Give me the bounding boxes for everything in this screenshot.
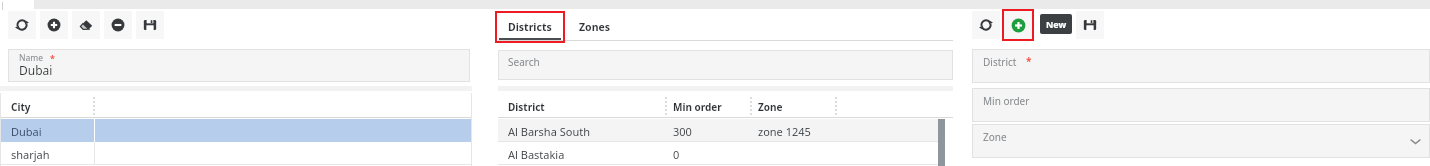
button[interactable]: Zone: [972, 124, 1430, 158]
button[interactable]: Add: [1004, 11, 1032, 39]
button[interactable]: District: [972, 49, 1430, 83]
staticText: 0: [673, 147, 680, 162]
staticText: Min order: [673, 100, 722, 114]
staticText: zone 1245: [758, 124, 811, 139]
staticText: New: [1046, 18, 1067, 30]
button[interactable]: sharjah: [0, 142, 472, 165]
staticText: Districts: [508, 20, 552, 34]
staticText: Dubai: [11, 124, 42, 139]
button[interactable]: Dubai: [0, 119, 472, 142]
button[interactable]: Add: [40, 11, 68, 39]
button[interactable]: Refresh: [8, 11, 36, 39]
button[interactable]: Remove: [104, 11, 132, 39]
staticText: *: [50, 52, 55, 64]
button[interactable]: Name: [8, 49, 470, 82]
button[interactable]: Districts: [499, 14, 561, 40]
staticText: Zone: [758, 100, 783, 114]
button[interactable]: Save: [1076, 11, 1104, 39]
button[interactable]: Save: [136, 11, 164, 39]
button[interactable]: Search: [498, 50, 953, 80]
button[interactable]: Min order: [972, 88, 1430, 122]
button[interactable]: Al Barsha South: [498, 119, 938, 142]
staticText: Dubai: [19, 62, 53, 78]
button[interactable]: New: [1040, 14, 1072, 34]
staticText: Search: [508, 55, 540, 69]
staticText: sharjah: [11, 147, 50, 162]
staticText: City: [11, 100, 31, 114]
button[interactable]: Clear: [72, 11, 100, 39]
staticText: Zone: [983, 130, 1007, 144]
staticText: *: [1026, 54, 1032, 68]
staticText: Zones: [579, 20, 611, 34]
button[interactable]: Al Bastakia: [498, 142, 938, 165]
staticText: Min order: [983, 94, 1030, 108]
staticText: District: [983, 55, 1017, 69]
staticText: Name: [19, 52, 43, 64]
staticText: District: [508, 100, 545, 114]
button[interactable]: Zones: [570, 14, 620, 40]
staticText: 300: [673, 124, 692, 139]
staticText: Al Bastakia: [508, 147, 565, 162]
button[interactable]: Refresh: [972, 11, 1000, 39]
staticText: Al Barsha South: [508, 124, 590, 139]
